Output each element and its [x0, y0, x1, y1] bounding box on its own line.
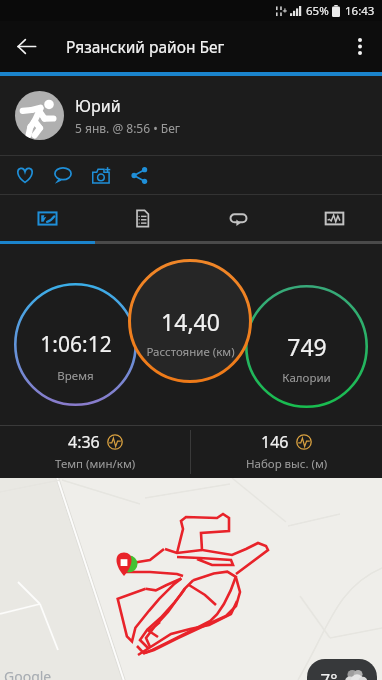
staticText: 65% [306, 3, 329, 19]
staticText: Набор выс. (м) [246, 456, 328, 472]
staticText: Время [57, 368, 94, 384]
staticText: 16:43 [345, 3, 375, 19]
button[interactable]: More options [338, 21, 382, 72]
button[interactable]: 4:36 [0, 425, 190, 478]
staticText: Калории [282, 370, 331, 386]
staticText: Google [4, 667, 52, 680]
staticText: 1:06:12 [40, 330, 112, 359]
button[interactable]: Details [95, 195, 190, 241]
staticText: 5 янв. @ 8:56 • Бег [75, 120, 181, 136]
staticText: 146 [261, 431, 289, 453]
staticText: 4:36 [68, 431, 100, 453]
button[interactable]: Comment [46, 158, 80, 192]
button[interactable]: Like [8, 158, 42, 192]
staticText: Расстояние (км) [146, 344, 235, 360]
button[interactable]: Overview [0, 195, 95, 241]
button[interactable]: -7° [307, 659, 377, 680]
staticText: 749 [287, 331, 327, 362]
button[interactable]: Back [0, 21, 52, 72]
button[interactable]: Share [122, 158, 156, 192]
button[interactable]: Laps [190, 195, 286, 241]
button[interactable]: 146 [191, 425, 382, 478]
staticText: 14,40 [161, 306, 220, 337]
staticText: Рязанский район Бег [66, 36, 225, 57]
button[interactable]: Юрий [0, 76, 382, 154]
staticText: Юрий [75, 95, 121, 117]
button[interactable]: Add photo [84, 158, 118, 192]
staticText: -7° [315, 668, 338, 680]
button[interactable]: Charts [286, 195, 382, 241]
staticText: Темп (мин/км) [55, 456, 136, 472]
